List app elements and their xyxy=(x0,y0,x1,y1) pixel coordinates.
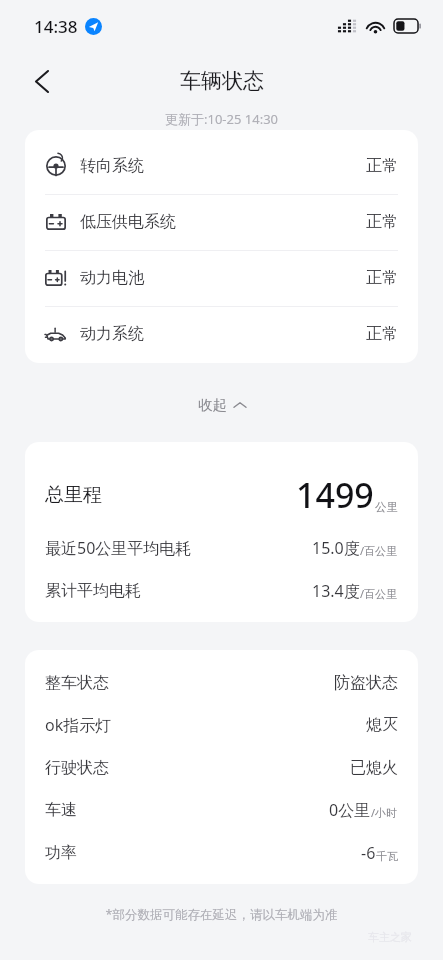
staticText: 收起 xyxy=(198,396,227,414)
button[interactable]: 累计平均电耗 xyxy=(25,573,418,609)
staticText: 正常 xyxy=(366,324,398,344)
staticText: 动力电池 xyxy=(80,268,144,288)
staticText: 总里程 xyxy=(45,483,102,507)
staticText: 最近50公里平均电耗 xyxy=(45,537,192,559)
staticText: 14:38 xyxy=(34,15,78,38)
staticText: 整车状态 xyxy=(45,673,109,693)
staticText: 车辆状态 xyxy=(180,68,264,94)
staticText: 转向系统 xyxy=(80,156,144,176)
staticText: /百公里 xyxy=(360,586,398,601)
staticText: *部分数据可能存在延迟，请以车机端为准 xyxy=(0,906,443,923)
staticText: 正常 xyxy=(366,156,398,176)
staticText: ok指示灯 xyxy=(45,714,112,736)
staticText: 已熄火 xyxy=(350,758,398,778)
staticText: 防盗状态 xyxy=(334,673,398,693)
staticText: 0公里 xyxy=(329,799,371,821)
staticText: 15.0度 xyxy=(312,537,360,559)
button[interactable]: 总里程 xyxy=(25,468,418,522)
button[interactable]: 收起 xyxy=(0,388,443,422)
button[interactable]: 低压供电系统 xyxy=(25,194,418,250)
staticText: 正常 xyxy=(366,268,398,288)
staticText: 车速 xyxy=(45,800,77,820)
staticText: /百公里 xyxy=(360,543,398,558)
staticText: 正常 xyxy=(366,212,398,232)
staticText: 1499 xyxy=(296,472,374,518)
button[interactable]: 转向系统 xyxy=(25,138,418,194)
staticText: 公里 xyxy=(375,500,398,514)
button[interactable]: 动力系统 xyxy=(25,306,418,362)
staticText: 13.4度 xyxy=(312,580,360,602)
staticText: 更新于:10-25 14:30 xyxy=(0,110,443,128)
button[interactable]: 功率 xyxy=(25,835,418,871)
staticText: 熄灭 xyxy=(366,715,398,735)
staticText: 功率 xyxy=(45,843,77,863)
button[interactable]: 动力电池 xyxy=(25,250,418,306)
staticText: -6 xyxy=(361,842,376,864)
staticText: 车主之家 xyxy=(368,930,412,944)
button[interactable]: 返回 xyxy=(20,59,64,103)
staticText: 低压供电系统 xyxy=(80,212,176,232)
staticText: 动力系统 xyxy=(80,324,144,344)
button[interactable]: 最近50公里平均电耗 xyxy=(25,530,418,566)
staticText: 累计平均电耗 xyxy=(45,581,141,601)
button[interactable]: 车速 xyxy=(25,792,418,828)
staticText: 行驶状态 xyxy=(45,758,109,778)
staticText: 千瓦 xyxy=(376,849,398,863)
button[interactable]: ok指示灯 xyxy=(25,707,418,743)
button[interactable]: 整车状态 xyxy=(25,665,418,701)
button[interactable]: 行驶状态 xyxy=(25,750,418,786)
staticText: /小时 xyxy=(371,805,398,820)
